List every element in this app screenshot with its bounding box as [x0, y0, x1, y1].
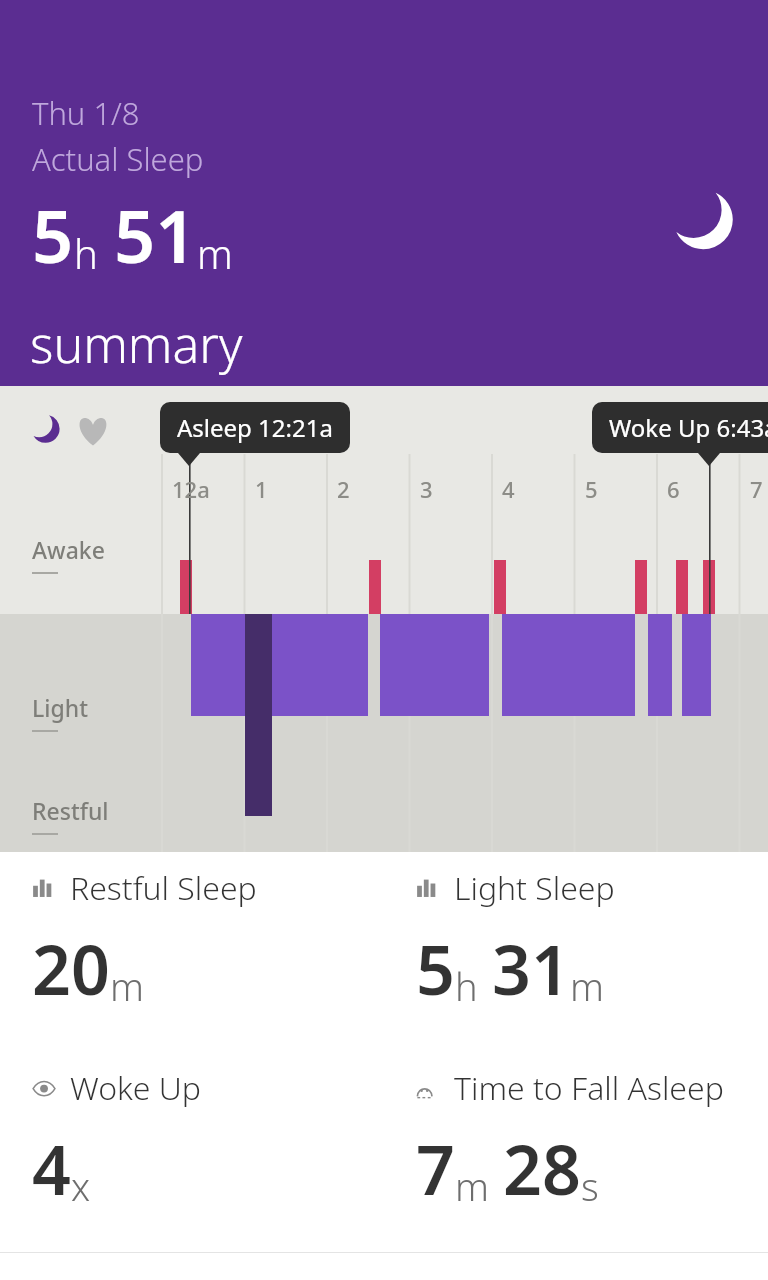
staticText: Woke Up — [70, 1066, 202, 1110]
staticText: h — [74, 226, 98, 280]
button[interactable]: Asleep 12:21a — [160, 402, 350, 453]
staticText: 20 — [32, 922, 110, 1015]
staticText: 6 — [667, 474, 680, 504]
staticText: h — [455, 960, 478, 1012]
staticText: Thu 1/8 — [32, 92, 140, 134]
button[interactable]: Light Sleep — [384, 852, 768, 1052]
staticText: 4 — [32, 1122, 71, 1215]
button[interactable]: Thu 1/8 — [0, 0, 768, 386]
staticText: Restful Sleep — [70, 866, 257, 910]
staticText: x — [71, 1160, 91, 1212]
staticText: 5 — [585, 474, 598, 504]
staticText: m — [110, 960, 144, 1012]
button[interactable]: Restful Sleep — [0, 852, 384, 1052]
staticText: s — [581, 1160, 599, 1212]
staticText: Light — [32, 692, 88, 723]
staticText: 3 — [420, 474, 433, 504]
staticText: Actual Sleep — [32, 138, 204, 180]
staticText: 5 — [32, 186, 74, 284]
staticText: Awake — [32, 534, 105, 565]
staticText: 28 — [503, 1122, 581, 1215]
staticText: m — [455, 1160, 489, 1212]
button[interactable]: Sleep view — [0, 386, 768, 852]
staticText: 7 — [416, 1122, 455, 1215]
staticText: Asleep 12:21a — [177, 411, 333, 444]
staticText: Time to Fall Asleep — [454, 1066, 724, 1110]
button[interactable]: Time to Fall Asleep — [384, 1052, 768, 1252]
staticText: 7 — [750, 474, 763, 504]
staticText: 51 — [114, 186, 197, 284]
staticText: 12a — [172, 474, 210, 504]
staticText: 5 — [416, 922, 455, 1015]
button[interactable]: Woke Up — [0, 1052, 384, 1252]
button[interactable]: Heart rate view — [74, 412, 112, 450]
staticText: Woke Up 6:43a — [609, 411, 768, 444]
button[interactable]: Sleep — [664, 182, 744, 262]
staticText: Restful — [32, 795, 109, 826]
button[interactable]: Sleep view — [26, 410, 66, 450]
staticText: m — [197, 226, 233, 280]
staticText: m — [570, 960, 604, 1012]
staticText: 31 — [492, 922, 570, 1015]
staticText: 1 — [255, 474, 268, 504]
staticText: 4 — [502, 474, 515, 504]
button[interactable]: Woke Up 6:43a — [592, 402, 768, 453]
staticText: Light Sleep — [454, 866, 615, 910]
staticText: summary — [30, 310, 243, 378]
staticText: 2 — [337, 474, 350, 504]
